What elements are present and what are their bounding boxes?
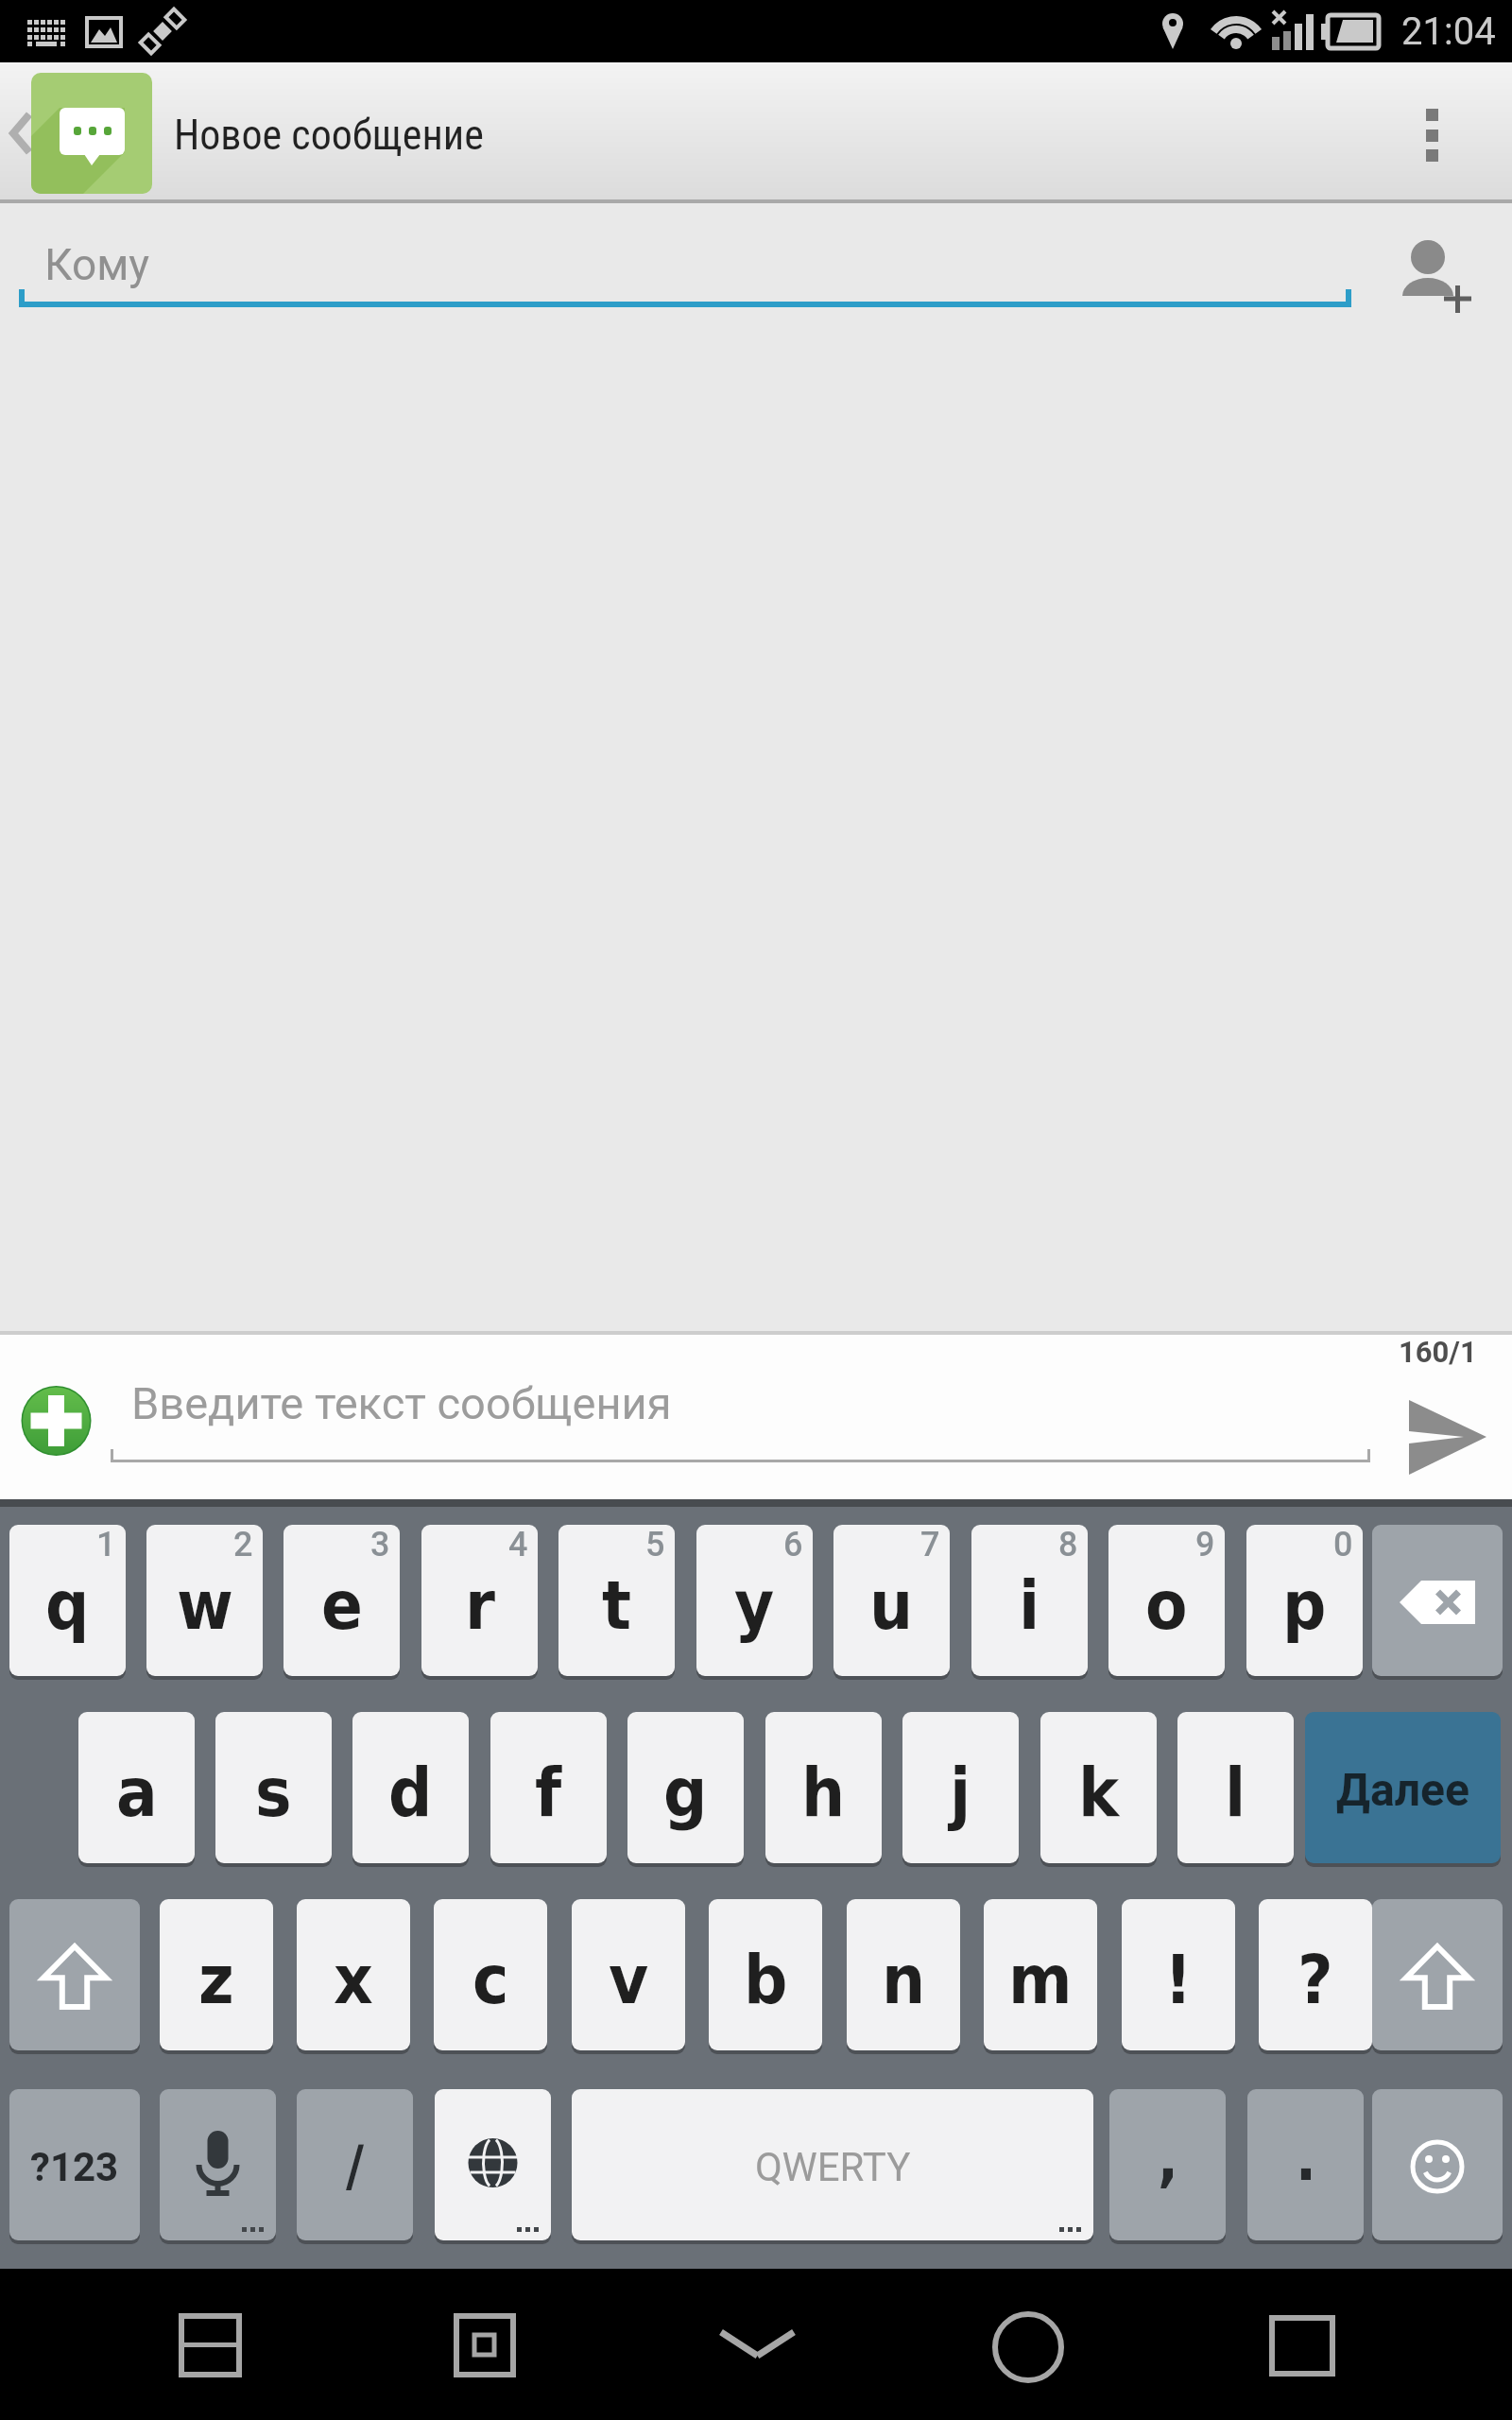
staticText: t bbox=[602, 1565, 631, 1645]
staticText: 8 bbox=[1058, 1525, 1078, 1564]
staticText: Кому bbox=[44, 239, 150, 290]
button[interactable]: w bbox=[146, 1525, 263, 1680]
button[interactable]: f bbox=[490, 1712, 607, 1867]
staticText: 160/1 bbox=[1399, 1335, 1477, 1369]
button[interactable]: i bbox=[971, 1525, 1088, 1680]
button[interactable] bbox=[1372, 2089, 1503, 2244]
staticText: y bbox=[734, 1565, 775, 1645]
staticText: 3 bbox=[370, 1525, 390, 1564]
staticText: Далее bbox=[1336, 1763, 1469, 1816]
staticText: 0 bbox=[1333, 1525, 1353, 1564]
button[interactable]: p bbox=[1246, 1525, 1363, 1680]
button[interactable] bbox=[1397, 1390, 1491, 1479]
button[interactable] bbox=[715, 2303, 800, 2388]
staticText: 9 bbox=[1195, 1525, 1215, 1564]
staticText: ? bbox=[1297, 1940, 1333, 2019]
button[interactable]: y bbox=[696, 1525, 813, 1680]
button[interactable]: q bbox=[9, 1525, 126, 1680]
button[interactable] bbox=[1372, 1899, 1503, 2054]
button[interactable]: g bbox=[627, 1712, 744, 1867]
staticText: Введите текст сообщения bbox=[131, 1377, 672, 1429]
staticText: x bbox=[334, 1940, 373, 2019]
staticText: ! bbox=[1164, 1940, 1193, 2019]
staticText: r bbox=[465, 1565, 495, 1645]
button[interactable]: z bbox=[160, 1899, 273, 2054]
staticText: v bbox=[609, 1940, 649, 2019]
staticText: ?123 bbox=[30, 2144, 119, 2190]
staticText: d bbox=[388, 1753, 433, 1832]
staticText: k bbox=[1078, 1753, 1120, 1832]
button[interactable] bbox=[168, 2303, 253, 2388]
button[interactable]: b bbox=[709, 1899, 822, 2054]
button[interactable]: c bbox=[434, 1899, 547, 2054]
button[interactable]: QWERTY bbox=[572, 2089, 1093, 2244]
button[interactable] bbox=[442, 2303, 527, 2388]
staticText: f bbox=[535, 1753, 562, 1832]
button[interactable] bbox=[31, 73, 152, 194]
staticText: s bbox=[255, 1753, 292, 1832]
staticText: j bbox=[950, 1753, 971, 1832]
button[interactable] bbox=[1389, 227, 1484, 321]
staticText: m bbox=[1008, 1940, 1073, 2019]
button[interactable]: Кому bbox=[19, 219, 1351, 308]
button[interactable] bbox=[1260, 2303, 1345, 2388]
button[interactable]: s bbox=[215, 1712, 332, 1867]
button[interactable]: l bbox=[1177, 1712, 1294, 1867]
staticText: . bbox=[1296, 2124, 1316, 2195]
button[interactable] bbox=[21, 1386, 92, 1457]
button[interactable] bbox=[435, 2089, 551, 2244]
staticText: 1 bbox=[96, 1525, 116, 1564]
staticText: e bbox=[321, 1565, 363, 1645]
button[interactable]: h bbox=[765, 1712, 882, 1867]
staticText: 21:04 bbox=[1401, 9, 1496, 54]
button[interactable]: k bbox=[1040, 1712, 1157, 1867]
staticText: i bbox=[1019, 1565, 1040, 1645]
staticText: o bbox=[1145, 1565, 1188, 1645]
button[interactable]: a bbox=[78, 1712, 195, 1867]
staticText: g bbox=[663, 1753, 708, 1832]
button[interactable]: d bbox=[352, 1712, 469, 1867]
button[interactable]: / bbox=[297, 2089, 413, 2244]
button[interactable]: x bbox=[297, 1899, 410, 2054]
button[interactable]: ?123 bbox=[9, 2089, 140, 2244]
button[interactable] bbox=[0, 90, 45, 175]
staticText: z bbox=[198, 1940, 234, 2019]
button[interactable] bbox=[1380, 80, 1493, 184]
button[interactable]: n bbox=[847, 1899, 960, 2054]
staticText: b bbox=[744, 1940, 788, 2019]
staticText: c bbox=[472, 1940, 509, 2019]
staticText: / bbox=[346, 2135, 365, 2199]
staticText: l bbox=[1225, 1753, 1246, 1832]
staticText: Новое сообщение bbox=[174, 111, 484, 160]
staticText: 5 bbox=[645, 1525, 665, 1564]
button[interactable]: t bbox=[558, 1525, 675, 1680]
button[interactable]: , bbox=[1109, 2089, 1226, 2244]
staticText: , bbox=[1158, 2124, 1178, 2195]
staticText: 7 bbox=[920, 1525, 940, 1564]
staticText: a bbox=[116, 1753, 158, 1832]
staticText: 6 bbox=[783, 1525, 803, 1564]
button[interactable] bbox=[160, 2089, 276, 2244]
button[interactable]: v bbox=[572, 1899, 685, 2054]
button[interactable] bbox=[1372, 1525, 1503, 1680]
button[interactable]: m bbox=[984, 1899, 1097, 2054]
button[interactable]: Введите текст сообщения bbox=[109, 1371, 1375, 1465]
button[interactable]: . bbox=[1247, 2089, 1364, 2244]
button[interactable]: j bbox=[902, 1712, 1019, 1867]
staticText: h bbox=[801, 1753, 846, 1832]
button[interactable] bbox=[986, 2303, 1071, 2388]
button[interactable]: Далее bbox=[1305, 1712, 1501, 1867]
staticText: w bbox=[177, 1565, 233, 1645]
button[interactable]: ? bbox=[1259, 1899, 1372, 2054]
button[interactable]: r bbox=[421, 1525, 538, 1680]
staticText: p bbox=[1282, 1565, 1327, 1645]
staticText: 4 bbox=[508, 1525, 528, 1564]
button[interactable]: u bbox=[833, 1525, 950, 1680]
button[interactable]: e bbox=[283, 1525, 400, 1680]
button[interactable] bbox=[9, 1899, 140, 2054]
button[interactable]: o bbox=[1108, 1525, 1225, 1680]
staticText: u bbox=[869, 1565, 914, 1645]
staticText: n bbox=[882, 1940, 926, 2019]
button[interactable]: ! bbox=[1122, 1899, 1235, 2054]
staticText: QWERTY bbox=[755, 2144, 911, 2190]
